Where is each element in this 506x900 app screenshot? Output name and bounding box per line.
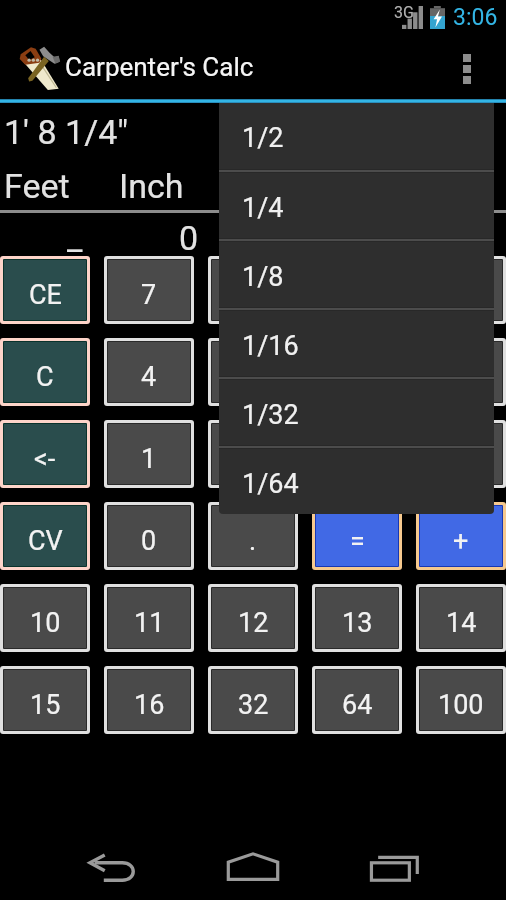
- staticText: Carpenter's Calc: [65, 52, 254, 82]
- button[interactable]: 16: [108, 670, 190, 730]
- staticText: 1/16: [242, 330, 299, 362]
- staticText: 1: [141, 443, 157, 475]
- staticText: 11: [134, 607, 165, 639]
- button[interactable]: 4: [108, 342, 190, 402]
- staticText: CE: [29, 279, 62, 311]
- button[interactable]: 13: [316, 588, 398, 648]
- button[interactable]: 1/2: [219, 103, 494, 169]
- staticText: 3: [349, 443, 365, 475]
- staticText: 0: [141, 525, 157, 557]
- button[interactable]: 6: [316, 342, 398, 402]
- button[interactable]: =: [316, 506, 398, 566]
- button[interactable]: 64: [316, 670, 398, 730]
- button[interactable]: 1/8: [219, 242, 494, 307]
- button[interactable]: 1/64: [219, 449, 494, 514]
- button[interactable]: 10: [4, 588, 86, 648]
- staticText: *: [455, 361, 467, 393]
- button[interactable]: 14: [420, 588, 502, 648]
- button[interactable]: C: [4, 342, 86, 402]
- staticText: 1/4: [242, 192, 284, 224]
- staticText: CV: [28, 525, 63, 557]
- button[interactable]: Home: [218, 842, 288, 892]
- staticText: _: [67, 218, 83, 258]
- button[interactable]: .: [212, 506, 294, 566]
- button[interactable]: 1/16: [219, 311, 494, 376]
- button[interactable]: 5: [212, 342, 294, 402]
- staticText: /: [455, 279, 467, 311]
- staticText: 1/64: [242, 468, 299, 500]
- staticText: 1/8: [242, 261, 284, 293]
- button[interactable]: CV: [4, 506, 86, 566]
- staticText: 100: [438, 689, 484, 721]
- staticText: 14: [446, 607, 477, 639]
- staticText: 9: [349, 279, 365, 311]
- button[interactable]: 1/4: [219, 173, 494, 238]
- staticText: 3:06: [453, 4, 498, 31]
- staticText: 1/2: [242, 122, 284, 154]
- staticText: Feet: [4, 166, 70, 206]
- button[interactable]: 32: [212, 670, 294, 730]
- staticText: 1' 8 1/4": [4, 112, 129, 152]
- button[interactable]: +: [420, 506, 502, 566]
- staticText: 32: [238, 689, 269, 721]
- staticText: 13: [342, 607, 373, 639]
- button[interactable]: 7: [108, 260, 190, 320]
- staticText: -: [457, 443, 465, 475]
- staticText: 12: [238, 607, 269, 639]
- button[interactable]: 1: [108, 424, 190, 484]
- staticText: 10: [30, 607, 61, 639]
- button[interactable]: *: [420, 342, 502, 402]
- staticText: C: [36, 361, 54, 393]
- staticText: 16: [134, 689, 165, 721]
- staticText: 0: [179, 218, 199, 258]
- button[interactable]: CE: [4, 260, 86, 320]
- button[interactable]: 11: [108, 588, 190, 648]
- button[interactable]: 15: [4, 670, 86, 730]
- button[interactable]: 2: [212, 424, 294, 484]
- staticText: 64: [342, 689, 373, 721]
- button[interactable]: -: [420, 424, 502, 484]
- button[interactable]: 100: [420, 670, 502, 730]
- button[interactable]: Back: [78, 843, 148, 893]
- button[interactable]: 8: [212, 260, 294, 320]
- staticText: 3G: [394, 3, 414, 22]
- staticText: 1/32: [242, 399, 299, 431]
- staticText: 4: [141, 361, 157, 393]
- button[interactable]: 1/32: [219, 380, 494, 445]
- staticText: 6: [349, 361, 365, 393]
- staticText: 2: [245, 443, 261, 475]
- staticText: 8: [245, 279, 261, 311]
- staticText: <-: [34, 443, 56, 475]
- staticText: 5: [245, 361, 261, 393]
- staticText: =: [350, 525, 365, 557]
- button[interactable]: 12: [212, 588, 294, 648]
- button[interactable]: /: [420, 260, 502, 320]
- button[interactable]: More options: [440, 35, 494, 99]
- button[interactable]: 0: [108, 506, 190, 566]
- button[interactable]: 3: [316, 424, 398, 484]
- staticText: Inch: [119, 166, 184, 206]
- staticText: .: [249, 525, 257, 557]
- button[interactable]: 9: [316, 260, 398, 320]
- staticText: 7: [141, 279, 157, 311]
- staticText: 15: [30, 689, 61, 721]
- button[interactable]: <-: [4, 424, 86, 484]
- button[interactable]: Recents: [359, 843, 429, 893]
- staticText: +: [453, 525, 469, 557]
